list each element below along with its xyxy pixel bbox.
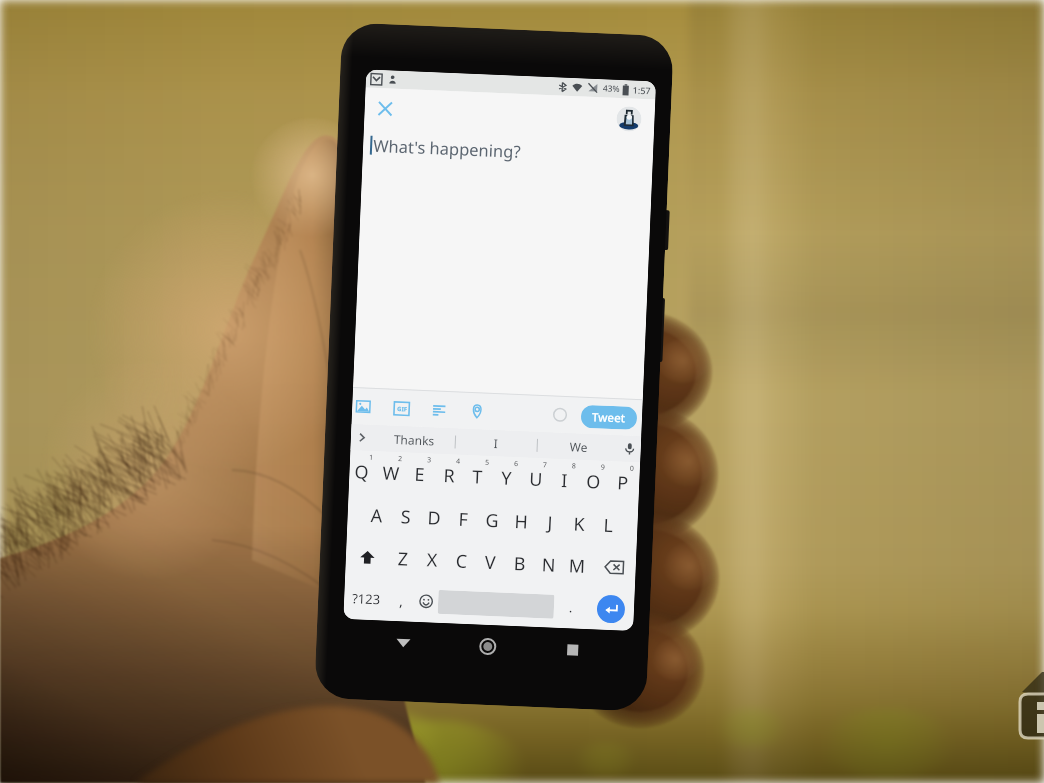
staticText: 8: [572, 461, 577, 472]
button[interactable]: L: [593, 503, 623, 546]
staticText: U: [529, 467, 544, 492]
button[interactable]: I: [551, 459, 582, 503]
button[interactable]: S: [390, 495, 420, 538]
button[interactable]: F: [448, 497, 478, 540]
staticText: ,: [399, 591, 403, 610]
staticText: What's happening?: [373, 134, 521, 162]
staticText: .: [569, 598, 573, 617]
button[interactable]: We: [537, 432, 619, 461]
staticText: A: [370, 503, 383, 528]
staticText: F: [458, 507, 469, 532]
button[interactable]: Enter: [586, 587, 635, 631]
staticText: 7: [543, 460, 548, 470]
button[interactable]: Emoji: [412, 580, 439, 623]
button[interactable]: .: [553, 586, 588, 629]
staticText: K: [573, 511, 586, 537]
button[interactable]: Backspace: [591, 545, 637, 589]
button[interactable]: Recents: [547, 627, 597, 671]
staticText: X: [426, 547, 438, 573]
staticText: 6: [514, 459, 519, 469]
staticText: M: [568, 553, 586, 579]
button[interactable]: Location: [467, 401, 487, 422]
button[interactable]: W: [378, 451, 408, 495]
button[interactable]: T: [464, 455, 495, 499]
staticText: Y: [501, 465, 513, 491]
button[interactable]: Voice input: [618, 435, 641, 462]
button[interactable]: C: [446, 539, 477, 582]
button[interactable]: Space: [438, 590, 554, 619]
staticText: I: [493, 435, 499, 451]
staticText: L: [603, 513, 614, 538]
button[interactable]: Home: [462, 624, 512, 668]
button[interactable]: Poll: [429, 399, 450, 420]
button[interactable]: Profile: [616, 106, 642, 132]
button[interactable]: Y: [493, 456, 524, 500]
staticText: J: [547, 510, 553, 536]
staticText: V: [484, 550, 496, 575]
staticText: B: [513, 551, 526, 576]
staticText: 1:57: [632, 84, 651, 96]
button[interactable]: D: [419, 496, 449, 539]
staticText: T: [472, 464, 484, 490]
staticText: We: [569, 438, 588, 455]
button[interactable]: Q: [349, 450, 379, 494]
button[interactable]: Back: [378, 620, 428, 664]
staticText: G: [485, 508, 500, 533]
button[interactable]: B: [504, 542, 535, 585]
button[interactable]: I: [455, 428, 537, 458]
button[interactable]: U: [522, 457, 553, 501]
button[interactable]: Shift: [345, 535, 390, 579]
staticText: 43%: [602, 82, 620, 95]
staticText: 5: [485, 458, 490, 468]
button[interactable]: ?123: [343, 577, 389, 621]
staticText: 1: [369, 453, 374, 463]
staticText: H: [514, 509, 529, 535]
button[interactable]: ,: [387, 579, 414, 622]
staticText: Thanks: [394, 431, 435, 449]
button[interactable]: Close: [368, 91, 401, 125]
button[interactable]: M: [562, 544, 593, 587]
button[interactable]: N: [533, 543, 564, 586]
staticText: ?123: [352, 589, 380, 608]
button[interactable]: Tweet: [580, 405, 637, 430]
button[interactable]: V: [475, 540, 506, 584]
button[interactable]: E: [406, 452, 437, 497]
staticText: I: [561, 468, 569, 493]
staticText: E: [414, 462, 426, 487]
staticText: D: [427, 505, 442, 531]
staticText: C: [455, 549, 468, 574]
staticText: 0: [630, 464, 635, 474]
staticText: S: [400, 504, 411, 530]
button[interactable]: More suggestions: [350, 424, 373, 451]
button[interactable]: G: [477, 498, 507, 542]
staticText: Q: [354, 459, 370, 485]
staticText: 9: [601, 463, 606, 473]
staticText: N: [541, 552, 556, 578]
button[interactable]: Z: [388, 537, 419, 580]
button[interactable]: Add photo: [353, 396, 374, 417]
button[interactable]: H: [506, 500, 536, 543]
staticText: 2: [398, 454, 403, 464]
button[interactable]: O: [580, 460, 611, 504]
staticText: GIF: [397, 405, 407, 413]
button[interactable]: Add GIF: [391, 398, 412, 418]
button[interactable]: K: [564, 502, 594, 545]
button[interactable]: X: [417, 538, 448, 581]
staticText: Tweet: [592, 409, 626, 427]
button[interactable]: J: [535, 501, 565, 544]
staticText: O: [586, 469, 602, 495]
staticText: Z: [397, 546, 409, 572]
staticText: W: [382, 460, 400, 486]
staticText: 4: [456, 456, 461, 467]
staticText: P: [617, 470, 629, 496]
staticText: 3: [427, 455, 432, 465]
button[interactable]: R: [435, 454, 466, 498]
staticText: R: [443, 463, 456, 488]
button[interactable]: P: [609, 461, 640, 505]
button[interactable]: A: [361, 494, 391, 537]
button[interactable]: Thanks: [372, 425, 455, 454]
